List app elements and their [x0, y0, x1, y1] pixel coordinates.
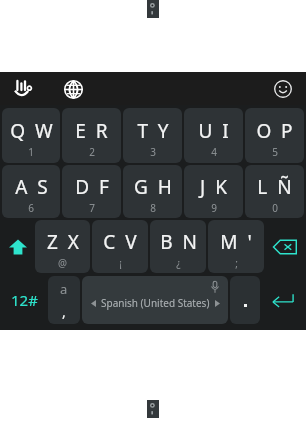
staticText: 1: [28, 145, 34, 159]
staticText: T Y: [137, 118, 169, 144]
button[interactable]: Change keyboard language: [60, 76, 86, 102]
staticText: @: [58, 256, 67, 270]
staticText: ¿: [176, 256, 181, 270]
staticText: B N: [160, 229, 197, 255]
staticText: 4: [211, 145, 217, 159]
button[interactable]: M ': [208, 220, 264, 273]
staticText: 8: [150, 201, 156, 215]
staticText: 5: [272, 145, 278, 159]
button[interactable]: L Ñ: [245, 165, 304, 218]
staticText: Spanish (United States): [101, 296, 210, 310]
staticText: L Ñ: [257, 174, 292, 200]
button[interactable]: Shift: [2, 220, 33, 273]
button[interactable]: J K: [184, 165, 243, 218]
staticText: ;: [235, 256, 238, 270]
button[interactable]: Z X: [35, 220, 90, 273]
staticText: D F: [75, 174, 109, 200]
button[interactable]: Period: [230, 276, 260, 324]
staticText: 0: [272, 201, 278, 215]
button[interactable]: G H: [123, 165, 182, 218]
staticText: A S: [15, 174, 48, 200]
staticText: J K: [200, 174, 227, 200]
staticText: a: [60, 280, 68, 298]
staticText: 12#: [11, 290, 38, 310]
button[interactable]: D F: [62, 165, 121, 218]
button[interactable]: 12#: [2, 276, 46, 324]
staticText: Z X: [47, 229, 79, 255]
staticText: G H: [134, 174, 172, 200]
staticText: Q W: [10, 118, 53, 144]
staticText: U I: [198, 118, 229, 144]
staticText: O P: [256, 118, 293, 144]
button[interactable]: Handwriting input: [10, 76, 36, 102]
staticText: 3: [150, 145, 156, 159]
button[interactable]: Emoji: [270, 76, 296, 102]
button[interactable]: U I: [184, 108, 243, 163]
staticText: 2: [89, 145, 95, 159]
staticText: M ': [220, 229, 252, 255]
button[interactable]: Backspace: [266, 220, 304, 273]
button[interactable]: Accents and comma: [48, 276, 80, 324]
staticText: ¡: [119, 256, 122, 270]
button[interactable]: E R: [62, 108, 121, 163]
button[interactable]: T Y: [123, 108, 182, 163]
button[interactable]: Q W: [2, 108, 60, 163]
staticText: ,: [62, 302, 66, 321]
button[interactable]: O P: [245, 108, 304, 163]
button[interactable]: A S: [2, 165, 60, 218]
button[interactable]: C V: [92, 220, 148, 273]
staticText: 9: [211, 201, 217, 215]
button[interactable]: Enter: [262, 276, 304, 324]
staticText: 6: [28, 201, 34, 215]
button[interactable]: B N: [150, 220, 206, 273]
staticText: 7: [89, 201, 95, 215]
button[interactable]: Spanish (United States): [82, 276, 228, 324]
staticText: E R: [75, 118, 108, 144]
staticText: C V: [103, 229, 137, 255]
